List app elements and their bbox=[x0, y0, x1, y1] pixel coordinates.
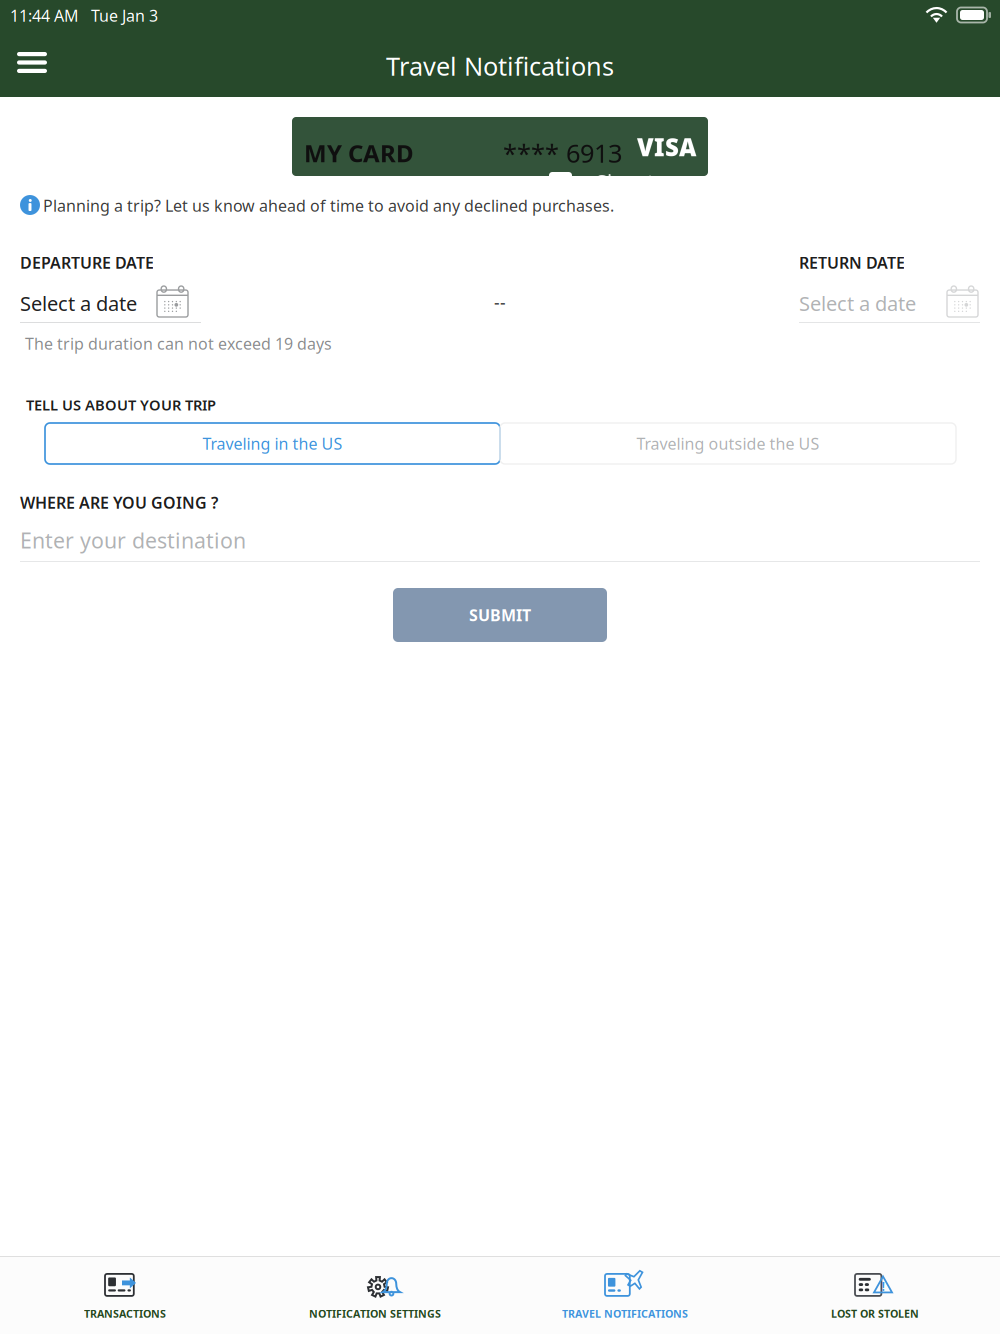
staticText: RETURN DATE bbox=[799, 252, 905, 273]
staticText: VISA bbox=[637, 131, 696, 163]
staticText: TELL US ABOUT YOUR TRIP bbox=[26, 395, 216, 414]
staticText: TRAVEL NOTIFICATIONS bbox=[562, 1306, 688, 1321]
button[interactable]: Enter your destination bbox=[20, 524, 980, 562]
staticText: Enter your destination bbox=[20, 526, 246, 554]
staticText: ! bbox=[881, 1278, 884, 1294]
staticText: DEPARTURE DATE bbox=[20, 252, 154, 273]
staticText: WHERE ARE YOU GOING ? bbox=[20, 492, 218, 513]
staticText: MY CARD bbox=[304, 137, 414, 169]
staticText: Traveling in the US bbox=[202, 433, 342, 454]
staticText: Planning a trip? Let us know ahead of ti… bbox=[43, 195, 614, 216]
button[interactable]: NOTIFICATION SETTINGS bbox=[250, 1253, 500, 1334]
button[interactable]: Menu bbox=[0, 38, 67, 87]
staticText: LOST OR STOLEN bbox=[831, 1306, 919, 1321]
staticText: **** 6913 bbox=[503, 136, 622, 170]
staticText: The trip duration can not exceed 19 days bbox=[25, 333, 332, 354]
button[interactable]: Traveling in the US bbox=[45, 423, 500, 464]
staticText: Travel Notifications bbox=[386, 49, 614, 83]
staticText: TRANSACTIONS bbox=[84, 1306, 166, 1321]
staticText: Traveling outside the US bbox=[636, 433, 819, 454]
button[interactable]: TRAVEL NOTIFICATIONS bbox=[500, 1253, 750, 1334]
staticText: -- bbox=[494, 291, 506, 314]
staticText: Select a date bbox=[799, 290, 916, 317]
button[interactable]: TRANSACTIONS bbox=[0, 1253, 250, 1334]
staticText: NOTIFICATION SETTINGS bbox=[309, 1306, 441, 1321]
staticText: SUBMIT bbox=[469, 604, 531, 626]
button[interactable]: SUBMIT bbox=[393, 588, 607, 642]
button[interactable]: Traveling outside the US bbox=[500, 423, 956, 464]
button[interactable]: Select a date bbox=[20, 286, 201, 324]
button[interactable]: ! bbox=[750, 1253, 1000, 1334]
staticText: 11:44 AM Tue Jan 3 bbox=[10, 5, 158, 26]
staticText: Signature bbox=[596, 168, 685, 195]
staticText: Select a date bbox=[20, 290, 137, 317]
button[interactable]: Select a date bbox=[799, 286, 980, 324]
